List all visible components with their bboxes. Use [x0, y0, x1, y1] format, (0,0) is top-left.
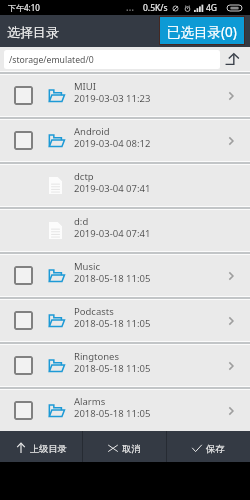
staticText: Alarms: [74, 395, 106, 408]
staticText: 下午4:10: [8, 2, 40, 13]
staticText: 已选目录(0): [167, 23, 237, 41]
staticText: 取消: [122, 443, 141, 455]
staticText: 2018-05-18 11:05: [74, 317, 151, 330]
staticText: /storage/emulated/0: [9, 54, 94, 66]
staticText: 4G: [206, 2, 218, 14]
staticText: 2018-05-18 11:05: [74, 362, 151, 375]
button[interactable]: dctp: [0, 165, 250, 206]
button[interactable]: Go up one level: [223, 50, 241, 68]
staticText: 2019-03-04 07:41: [74, 227, 151, 240]
button[interactable]: 已选目录(0): [160, 17, 244, 44]
button[interactable]: Ringtones: [0, 345, 250, 386]
button[interactable]: 取消: [83, 431, 166, 462]
staticText: 2019-03-04 07:41: [74, 182, 151, 195]
staticText: 选择目录: [7, 24, 59, 40]
button[interactable]: d:d: [0, 210, 250, 251]
button[interactable]: /storage/emulated/0: [4, 50, 220, 69]
button[interactable]: 保存: [167, 431, 250, 462]
staticText: MIUI: [74, 80, 97, 93]
staticText: Android: [74, 125, 110, 138]
staticText: 2018-05-18 11:05: [74, 407, 151, 420]
button[interactable]: Podcasts: [0, 300, 250, 341]
button[interactable]: Alarms: [0, 390, 250, 431]
staticText: 2019-03-04 08:12: [74, 137, 151, 150]
staticText: 保存: [206, 443, 225, 455]
staticText: dctp: [74, 170, 94, 183]
staticText: 上级目录: [30, 443, 67, 455]
button[interactable]: 上级目录: [0, 431, 82, 462]
staticText: 2019-03-03 11:23: [74, 92, 151, 105]
staticText: 2018-05-18 11:05: [74, 272, 151, 285]
button[interactable]: Music: [0, 255, 250, 296]
staticText: Music: [74, 260, 101, 273]
button[interactable]: Android: [0, 120, 250, 161]
staticText: 0.5K/s: [143, 2, 168, 14]
staticText: d:d: [74, 215, 89, 228]
staticText: Podcasts: [74, 305, 114, 318]
button[interactable]: MIUI: [0, 75, 250, 116]
staticText: Ringtones: [74, 350, 120, 363]
